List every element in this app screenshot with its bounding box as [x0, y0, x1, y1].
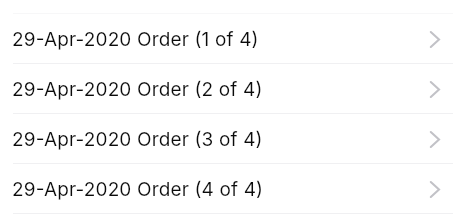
button[interactable]: 29-Apr-2020 Order (3 of 4) [0, 114, 453, 163]
staticText: 29-Apr-2020 Order (3 of 4) [12, 128, 263, 151]
button[interactable]: 29-Apr-2020 Order (2 of 4) [0, 64, 453, 113]
staticText: 29-Apr-2020 Order (4 of 4) [12, 178, 264, 201]
staticText: 29-Apr-2020 Order (1 of 4) [12, 28, 259, 51]
staticText: 29-Apr-2020 Order (2 of 4) [12, 78, 263, 101]
button[interactable]: 29-Apr-2020 Order (4 of 4) [0, 164, 453, 213]
button[interactable]: 29-Apr-2020 Order (1 of 4) [0, 14, 453, 63]
